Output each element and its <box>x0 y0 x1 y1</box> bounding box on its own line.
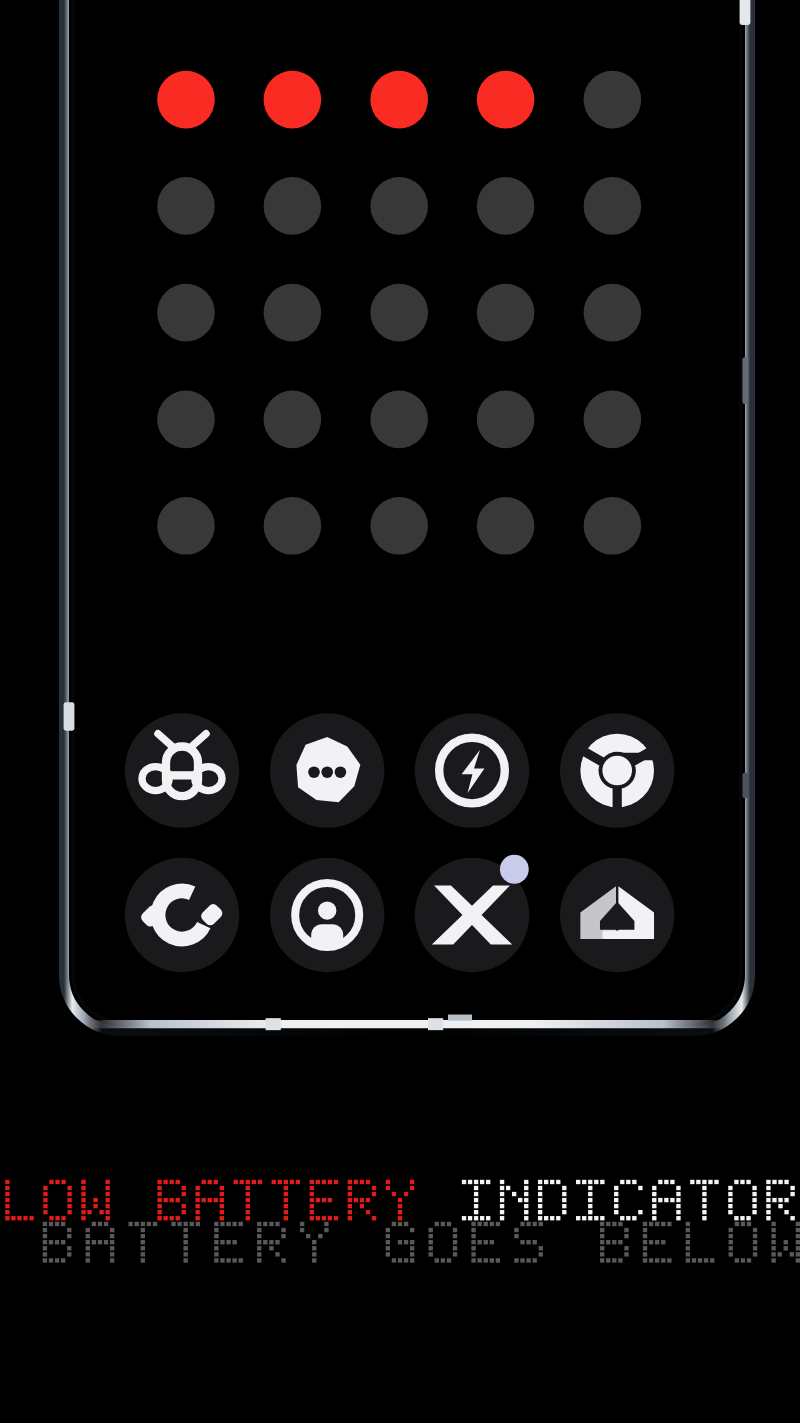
button[interactable]: Contacts <box>270 857 384 971</box>
button[interactable]: X <box>414 857 528 971</box>
button[interactable]: Phone <box>125 857 239 971</box>
button[interactable]: Bee app <box>125 713 239 827</box>
button[interactable]: Messages <box>270 713 384 827</box>
button[interactable]: Chrome <box>560 713 674 827</box>
button[interactable]: Google Home <box>560 857 674 971</box>
button[interactable]: Power <box>414 713 528 827</box>
